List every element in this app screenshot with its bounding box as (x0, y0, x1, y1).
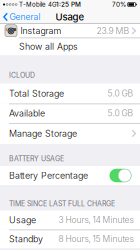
staticText: 70% (112, 1, 126, 8)
staticText: Show all Apps (19, 41, 78, 52)
staticText: Available (9, 108, 45, 119)
button[interactable]: Manage Storage (0, 123, 140, 144)
staticText: Usage (55, 11, 84, 23)
staticText: TIME SINCE LAST FULL CHARGE (9, 200, 115, 208)
staticText: 4G (48, 1, 57, 8)
staticText: 5.0 GB (107, 108, 133, 118)
button[interactable]: Battery Percentage (109, 169, 131, 182)
button[interactable]: Show all Apps (0, 37, 140, 55)
staticText: Instagram (20, 25, 61, 36)
staticText: BATTERY USAGE (9, 155, 64, 163)
staticText: 5.0 GB (107, 88, 133, 99)
staticText: General (9, 12, 40, 22)
staticText: Total Storage (9, 88, 64, 99)
staticText: 1:25 PM (56, 1, 81, 8)
staticText: 3 Hours, 14 Minutes (58, 215, 133, 225)
staticText: Manage Storage (9, 128, 77, 139)
staticText: T-Mobile (19, 1, 46, 8)
staticText: Usage (9, 215, 36, 225)
staticText: 8 Hours, 15 Minutes (58, 234, 133, 244)
button[interactable]: Back (0, 12, 40, 22)
staticText: 23.9 MB (96, 25, 129, 36)
staticText: ICLOUD (9, 71, 35, 79)
staticText: Battery Percentage (9, 170, 88, 181)
staticText: Standby (9, 234, 43, 244)
button[interactable]: Instagram (0, 24, 140, 37)
